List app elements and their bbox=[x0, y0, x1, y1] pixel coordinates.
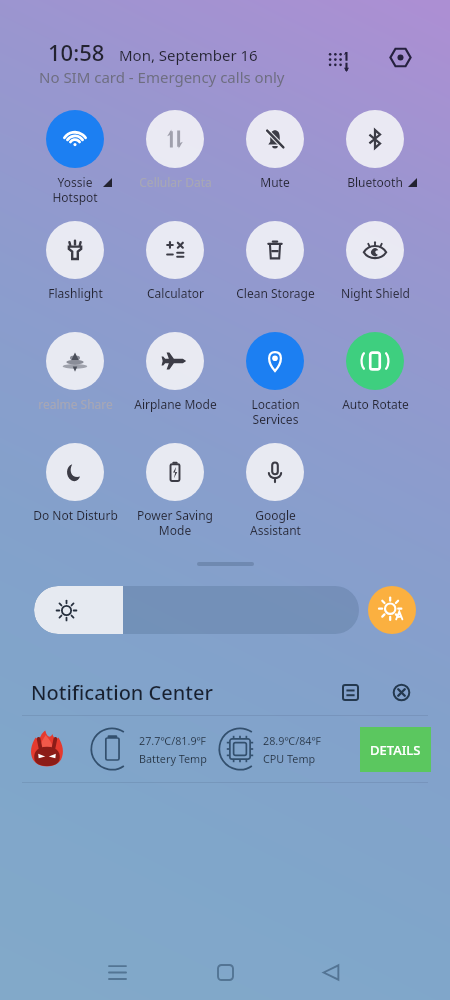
staticText: Location Services bbox=[251, 396, 300, 427]
staticText: Flashlight bbox=[48, 285, 103, 301]
staticText: Do Not Disturb bbox=[33, 507, 118, 523]
button[interactable]: Yossie Hotspot bbox=[25, 110, 125, 221]
button[interactable]: Clear all bbox=[385, 676, 417, 708]
button[interactable]: Clean Storage bbox=[225, 221, 325, 332]
staticText: Power Saving Mode bbox=[137, 507, 213, 538]
button[interactable]: Mute bbox=[225, 110, 325, 221]
button[interactable]: Location Services bbox=[225, 332, 325, 443]
button[interactable]: Notification settings bbox=[334, 676, 366, 708]
button[interactable]: Do Not Disturb bbox=[25, 443, 125, 554]
staticText: CPU Temp bbox=[263, 751, 316, 766]
button[interactable]: Calculator bbox=[125, 221, 225, 332]
staticText: Yossie Hotspot bbox=[52, 174, 98, 205]
staticText: Auto Rotate bbox=[342, 396, 409, 412]
staticText: Mute bbox=[260, 174, 290, 190]
button[interactable]: Bluetooth bbox=[325, 110, 425, 221]
button[interactable]: Edit tiles bbox=[320, 43, 356, 79]
button[interactable]: Auto brightness bbox=[368, 586, 416, 634]
staticText: Clean Storage bbox=[236, 285, 315, 301]
button[interactable]: Flashlight bbox=[25, 221, 125, 332]
staticText: Cellular Data bbox=[139, 174, 212, 190]
staticText: No SIM card - Emergency calls only bbox=[39, 67, 285, 87]
button[interactable]: Power Saving Mode bbox=[125, 443, 225, 554]
button[interactable] bbox=[34, 586, 359, 634]
button[interactable]: Home bbox=[203, 950, 247, 994]
button[interactable]: DETAILS bbox=[360, 727, 431, 772]
staticText: Mon, September 16 bbox=[119, 45, 258, 65]
staticText: Google Assistant bbox=[250, 507, 301, 538]
button[interactable]: realme Share bbox=[25, 332, 125, 443]
staticText: Calculator bbox=[147, 285, 204, 301]
staticText: Airplane Mode bbox=[134, 396, 217, 412]
button[interactable]: Night Shield bbox=[325, 221, 425, 332]
button[interactable]: Settings bbox=[382, 39, 418, 75]
button[interactable]: 27.7℃/81.9℉ bbox=[0, 716, 450, 782]
staticText: 28.9℃/84℉ bbox=[263, 733, 321, 748]
staticText: Notification Center bbox=[31, 679, 213, 706]
button[interactable]: Recents bbox=[95, 950, 139, 994]
button[interactable]: Google Assistant bbox=[225, 443, 325, 554]
staticText: Night Shield bbox=[341, 285, 410, 301]
button[interactable]: Back bbox=[309, 950, 353, 994]
button[interactable]: Auto Rotate bbox=[325, 332, 425, 443]
staticText: realme Share bbox=[38, 396, 113, 412]
button[interactable]: Airplane Mode bbox=[125, 332, 225, 443]
staticText: Battery Temp bbox=[139, 751, 207, 766]
staticText: 10:58 bbox=[48, 37, 105, 67]
staticText: DETAILS bbox=[370, 741, 421, 759]
staticText: Bluetooth bbox=[347, 174, 403, 190]
button[interactable]: Cellular Data bbox=[125, 110, 225, 221]
staticText: 27.7℃/81.9℉ bbox=[139, 733, 207, 748]
